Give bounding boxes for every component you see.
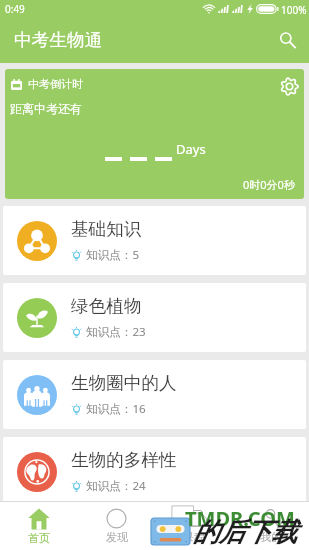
button[interactable]: 基础知识: [3, 206, 306, 275]
button[interactable]: 首页: [0, 502, 78, 550]
staticText: 基础知识: [71, 218, 142, 240]
staticText: 0时0分0秒: [243, 177, 295, 192]
staticText: 的后下载: [193, 516, 297, 549]
staticText: 知识点：23: [86, 324, 146, 340]
staticText: 知识点：16: [86, 401, 146, 417]
staticText: 距离中考还有: [10, 101, 82, 116]
button[interactable]: Settings: [275, 72, 303, 100]
staticText: 发现: [106, 530, 128, 544]
button[interactable]: 我的: [232, 502, 309, 550]
staticText: 生物的多样性: [71, 449, 177, 471]
button[interactable]: Search: [273, 26, 303, 56]
staticText: 生物圈中的人: [71, 372, 177, 394]
button[interactable]: 发现: [78, 502, 155, 550]
staticText: 首页: [28, 531, 50, 545]
staticText: TMDR.COM: [185, 505, 295, 532]
button[interactable]: 生物的多样性: [3, 437, 306, 506]
staticText: 我的: [260, 530, 282, 544]
staticText: 知识点：5: [86, 247, 140, 263]
staticText: 知识点：24: [86, 478, 146, 494]
staticText: Days: [176, 140, 206, 158]
button[interactable]: 中考倒计时: [5, 69, 304, 199]
button[interactable]: 课程: [155, 502, 232, 550]
staticText: 100%: [281, 3, 307, 17]
staticText: 0:49: [5, 2, 25, 16]
button[interactable]: 绿色植物: [3, 283, 306, 352]
button[interactable]: 生物圈中的人: [3, 360, 306, 429]
staticText: 绿色植物: [71, 295, 142, 317]
staticText: 课程: [183, 530, 205, 544]
staticText: 中考生物通: [14, 29, 102, 51]
staticText: 中考倒计时: [28, 77, 83, 91]
